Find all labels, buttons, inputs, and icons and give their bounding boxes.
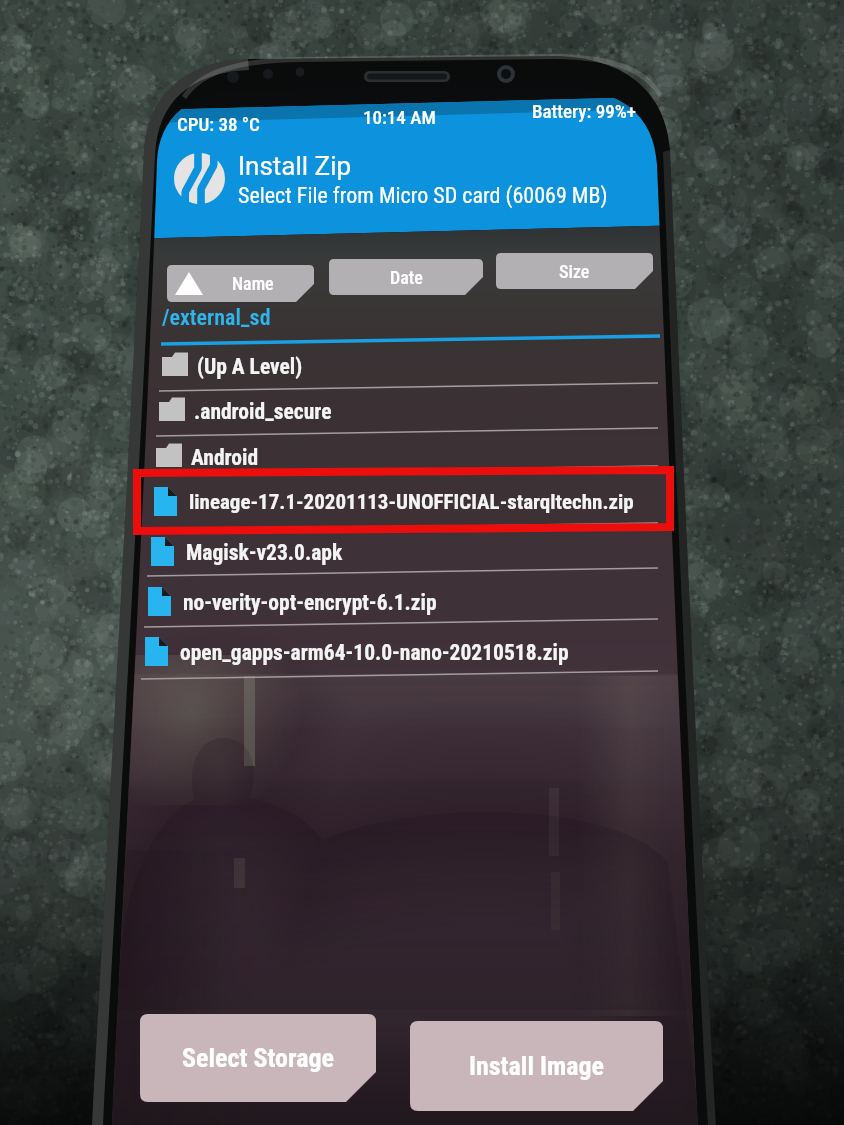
staticText: Install Image [469, 1051, 605, 1081]
button[interactable]: open_gapps-arm64-10.0-nano-20210518.zip [144, 630, 649, 674]
button[interactable]: Install Image [410, 1021, 663, 1111]
button[interactable]: Select Storage [140, 1014, 376, 1102]
button[interactable]: Name [167, 265, 314, 302]
staticText: Android [191, 445, 259, 470]
staticText: /external_sd [162, 305, 271, 331]
staticText: Install Zip [238, 151, 352, 181]
staticText: Select Storage [182, 1043, 334, 1073]
button[interactable]: Magisk-v23.0.apk [150, 530, 655, 574]
staticText: lineage-17.1-20201113-UNOFFICIAL-starqlt… [189, 490, 634, 515]
staticText: Select File from Micro SD card (60069 MB… [238, 183, 608, 209]
staticText: .android_secure [194, 399, 332, 424]
staticText: Battery: 99%+ [532, 100, 636, 122]
button[interactable]: Android [155, 435, 660, 479]
button[interactable]: (Up A Level) [161, 344, 666, 388]
button[interactable]: Size [496, 253, 653, 289]
staticText: Magisk-v23.0.apk [186, 540, 343, 565]
staticText: Size [559, 261, 590, 282]
button[interactable]: lineage-17.1-20201113-UNOFFICIAL-starqlt… [153, 480, 658, 524]
staticText: no-verity-opt-encrypt-6.1.zip [183, 590, 437, 615]
button[interactable]: no-verity-opt-encrypt-6.1.zip [147, 580, 652, 624]
staticText: 10:14 AM [363, 106, 436, 128]
other: TWRP [174, 153, 225, 204]
button[interactable]: Date [329, 259, 483, 295]
staticText: CPU: 38 °C [177, 113, 260, 135]
staticText: open_gapps-arm64-10.0-nano-20210518.zip [180, 640, 569, 665]
button[interactable]: .android_secure [158, 389, 663, 433]
staticText: Date [390, 267, 423, 288]
staticText: Name [232, 273, 274, 294]
staticText: (Up A Level) [197, 354, 303, 379]
